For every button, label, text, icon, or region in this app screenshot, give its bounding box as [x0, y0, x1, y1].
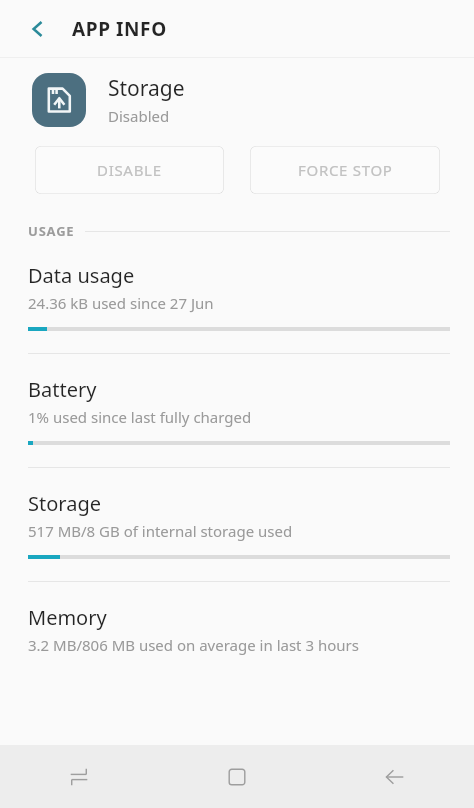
staticText: 24.36 kB used since 27 Jun [28, 293, 214, 313]
button[interactable]: Back [316, 745, 474, 808]
staticText: FORCE STOP [298, 160, 393, 180]
button[interactable]: DISABLE [35, 146, 224, 194]
staticText: Memory [28, 604, 107, 631]
staticText: USAGE [28, 222, 75, 240]
button[interactable]: Home [158, 745, 316, 808]
button[interactable]: Battery [0, 354, 474, 467]
staticText: Storage [28, 490, 101, 517]
staticText: 1% used since last fully charged [28, 407, 252, 427]
button[interactable]: Storage [0, 468, 474, 581]
staticText: Storage [108, 74, 185, 103]
button[interactable]: Memory [0, 582, 474, 695]
button[interactable]: Back [14, 5, 62, 53]
staticText: Battery [28, 376, 97, 403]
staticText: Data usage [28, 262, 135, 289]
staticText: 517 MB/8 GB of internal storage used [28, 521, 293, 541]
button[interactable]: FORCE STOP [250, 146, 440, 194]
staticText: APP INFO [72, 16, 167, 42]
staticText: 3.2 MB/806 MB used on average in last 3 … [28, 635, 359, 655]
staticText: DISABLE [97, 160, 162, 180]
button[interactable]: Recents [0, 745, 158, 808]
staticText: Disabled [108, 106, 170, 126]
button[interactable]: Data usage [0, 240, 474, 353]
